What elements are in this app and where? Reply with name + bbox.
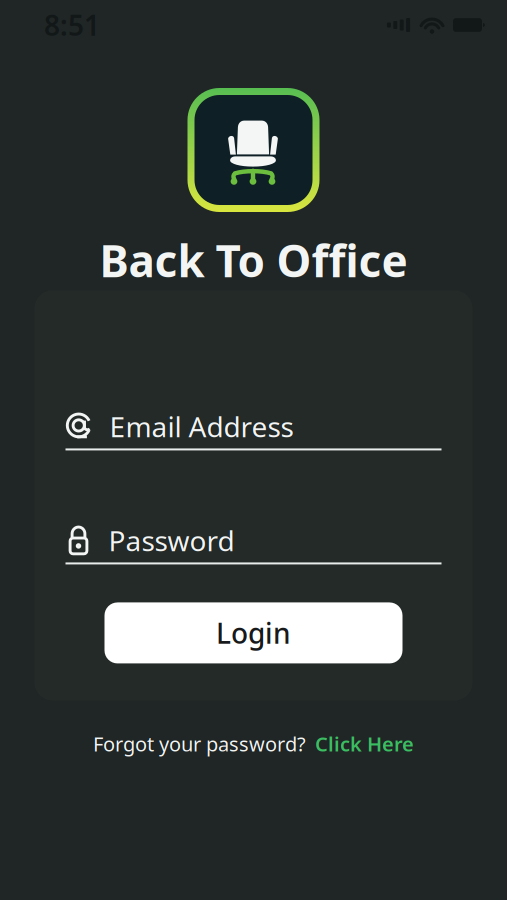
staticText: Login bbox=[216, 614, 291, 651]
button[interactable]: Login bbox=[34, 564, 472, 663]
button[interactable]: Click Here bbox=[315, 730, 414, 757]
staticText: Forgot your password? bbox=[93, 730, 306, 757]
staticText: 8:51 bbox=[44, 6, 100, 44]
button[interactable]: Password bbox=[34, 450, 472, 564]
button[interactable]: Email Address bbox=[34, 290, 472, 450]
staticText: Click Here bbox=[315, 730, 414, 757]
staticText: Back To Office bbox=[99, 231, 407, 289]
staticText: Password bbox=[108, 522, 234, 559]
staticText: Email Address bbox=[109, 408, 293, 445]
